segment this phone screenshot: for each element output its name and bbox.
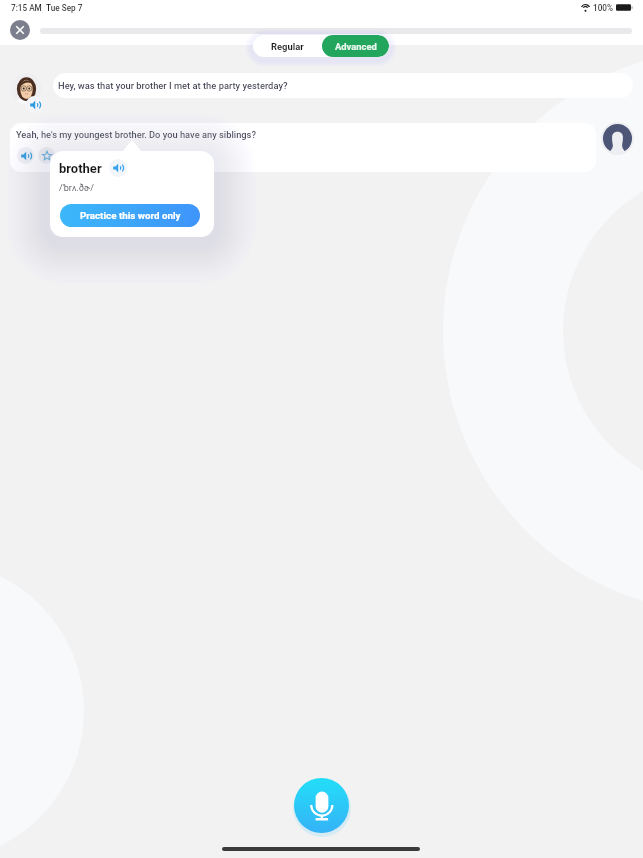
button[interactable]: Add to favourites	[38, 147, 55, 164]
button[interactable]: Play audio	[26, 96, 43, 113]
button[interactable]: Record	[294, 778, 349, 833]
button[interactable]: Hey, was that your brother I met at the …	[53, 73, 633, 98]
staticText: Hey, was that your brother I met at the …	[58, 80, 288, 91]
staticText: /ˈbrʌ.ðɚ/	[59, 183, 94, 194]
staticText: Regular	[271, 41, 304, 52]
staticText: Advanced	[335, 41, 377, 52]
staticText: 100%	[593, 3, 613, 13]
staticText: Practice this word only	[80, 210, 181, 221]
staticText: 7:15 AM	[11, 3, 42, 13]
staticText: Tue Sep 7	[46, 3, 83, 13]
button[interactable]: Play audio	[17, 147, 34, 164]
button[interactable]: Yeah, he's my youngest brother. Do you h…	[10, 123, 596, 172]
button[interactable]: Regular	[253, 35, 322, 57]
staticText: brother	[59, 161, 102, 176]
button[interactable]: Play word audio	[109, 159, 127, 177]
button[interactable]: Practice this word only	[60, 204, 200, 227]
button[interactable]: Advanced	[322, 35, 389, 57]
button[interactable]: Close	[10, 20, 30, 40]
staticText: Yeah, he's my youngest brother. Do you h…	[16, 129, 256, 140]
